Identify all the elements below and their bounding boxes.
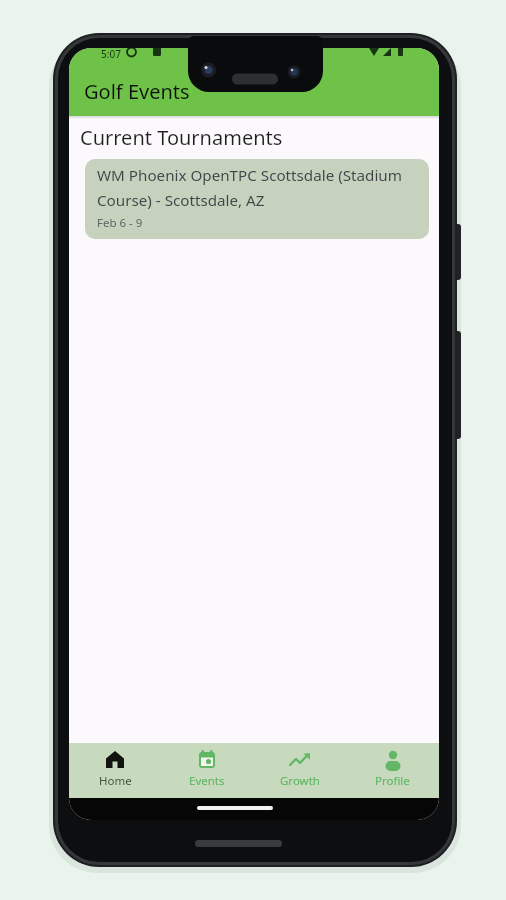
staticText: 5:07 — [101, 48, 121, 61]
button[interactable]: Home — [69, 743, 161, 798]
button[interactable]: WM Phoenix OpenTPC Scottsdale (Stadium — [85, 159, 429, 239]
button[interactable]: Growth — [253, 743, 346, 798]
staticText: WM Phoenix OpenTPC Scottsdale (Stadium — [97, 165, 402, 186]
button[interactable]: Events — [161, 743, 253, 798]
staticText: Golf Events — [84, 78, 190, 105]
staticText: Profile — [375, 773, 410, 789]
staticText: Growth — [280, 773, 320, 789]
button[interactable]: Profile — [346, 743, 439, 798]
staticText: Home — [99, 773, 132, 789]
staticText: Course) - Scottsdale, AZ — [97, 190, 265, 211]
staticText: Feb 6 - 9 — [97, 215, 143, 231]
staticText: Current Tournaments — [80, 124, 283, 151]
staticText: Events — [189, 773, 225, 789]
